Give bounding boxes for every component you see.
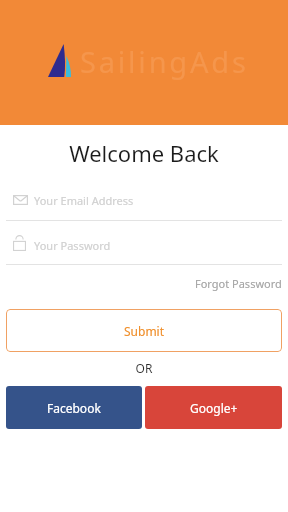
staticText: Forgot Password — [195, 276, 282, 291]
staticText: Google+ — [190, 400, 238, 416]
staticText: Your Password — [34, 238, 111, 253]
staticText: Welcome Back — [0, 138, 288, 168]
button[interactable]: Your Email Address — [6, 191, 282, 221]
button[interactable]: Forgot Password — [185, 272, 282, 294]
button[interactable]: Your Password — [6, 235, 282, 265]
staticText: OR — [0, 360, 288, 376]
button[interactable]: Submit — [6, 309, 282, 352]
staticText: Your Email Address — [34, 193, 134, 208]
staticText: Submit — [124, 323, 165, 339]
button[interactable]: Google+ — [145, 386, 282, 429]
staticText: SailingAds — [80, 42, 249, 81]
staticText: Facebook — [47, 400, 101, 416]
button[interactable]: Facebook — [6, 386, 142, 429]
